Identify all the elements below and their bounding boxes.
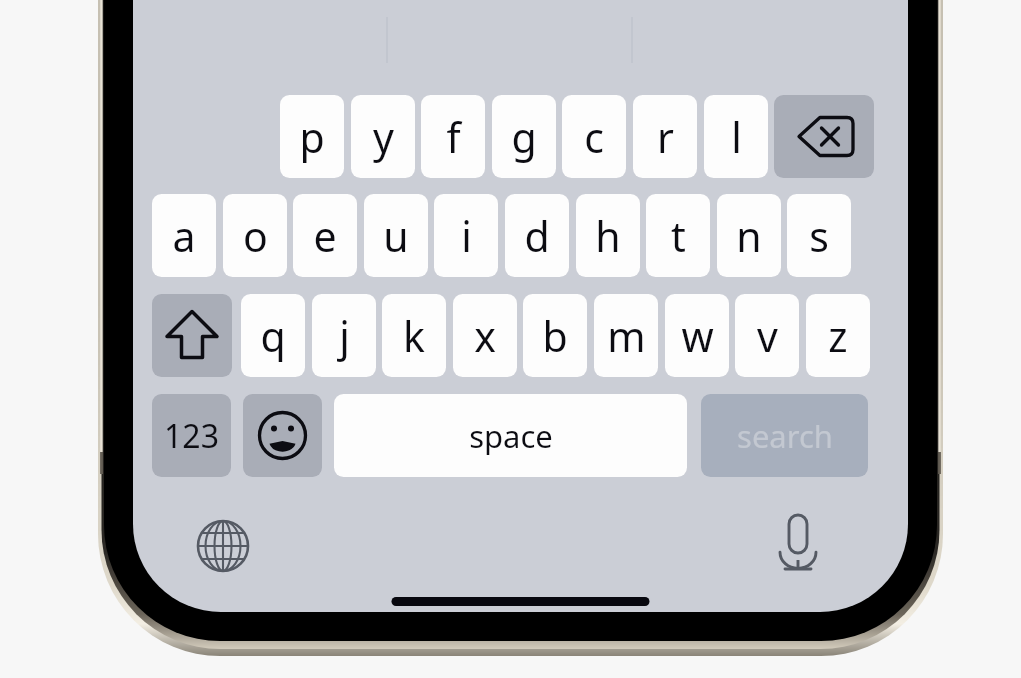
staticText: r bbox=[657, 109, 674, 165]
staticText: x bbox=[474, 308, 496, 364]
staticText: 123 bbox=[164, 414, 219, 458]
staticText: e bbox=[313, 208, 337, 264]
button[interactable]: Emoji bbox=[243, 394, 322, 477]
staticText: k bbox=[403, 308, 425, 364]
button[interactable]: m bbox=[594, 294, 658, 377]
button[interactable]: p bbox=[280, 95, 344, 178]
button[interactable]: y bbox=[351, 95, 415, 178]
button[interactable]: d bbox=[505, 194, 569, 277]
button[interactable]: j bbox=[312, 294, 376, 377]
staticText: d bbox=[524, 208, 550, 264]
button[interactable]: b bbox=[523, 294, 587, 377]
button[interactable]: search bbox=[701, 394, 868, 477]
staticText: search bbox=[737, 415, 833, 457]
staticText: p bbox=[299, 109, 325, 165]
button[interactable]: g bbox=[492, 95, 556, 178]
staticText: v bbox=[757, 308, 778, 364]
staticText: c bbox=[584, 109, 604, 165]
button[interactable]: h bbox=[576, 194, 640, 277]
button[interactable]: c bbox=[562, 95, 626, 178]
button[interactable]: w bbox=[665, 294, 729, 377]
button[interactable]: o bbox=[223, 194, 287, 277]
staticText: b bbox=[542, 308, 568, 364]
button[interactable]: space bbox=[334, 394, 687, 477]
button[interactable]: r bbox=[633, 95, 697, 178]
staticText: g bbox=[511, 109, 537, 165]
staticText: q bbox=[260, 308, 286, 364]
button[interactable]: k bbox=[382, 294, 446, 377]
button[interactable]: n bbox=[717, 194, 781, 277]
button[interactable]: t bbox=[646, 194, 710, 277]
staticText: o bbox=[243, 208, 268, 264]
staticText: n bbox=[736, 208, 762, 264]
button[interactable]: i bbox=[434, 194, 498, 277]
button[interactable]: f bbox=[421, 95, 485, 178]
staticText: y bbox=[373, 109, 394, 165]
staticText: f bbox=[446, 109, 461, 165]
button[interactable]: u bbox=[364, 194, 428, 277]
staticText: m bbox=[607, 308, 646, 364]
staticText: t bbox=[671, 208, 686, 264]
button[interactable]: s bbox=[787, 194, 851, 277]
staticText: z bbox=[828, 308, 848, 364]
button[interactable]: x bbox=[453, 294, 517, 377]
button[interactable]: Backspace bbox=[774, 95, 874, 178]
staticText: i bbox=[461, 208, 472, 264]
button[interactable]: l bbox=[704, 95, 768, 178]
staticText: s bbox=[809, 208, 829, 264]
button[interactable]: z bbox=[806, 294, 870, 377]
staticText: l bbox=[731, 109, 742, 165]
staticText: space bbox=[469, 415, 553, 457]
staticText: a bbox=[172, 208, 196, 264]
button[interactable]: q bbox=[241, 294, 305, 377]
button[interactable]: Shift bbox=[152, 294, 232, 377]
button[interactable]: v bbox=[735, 294, 799, 377]
staticText: j bbox=[339, 308, 350, 364]
staticText: w bbox=[681, 308, 714, 364]
button[interactable]: e bbox=[293, 194, 357, 277]
button[interactable]: 123 bbox=[152, 394, 231, 477]
staticText: h bbox=[595, 208, 621, 264]
button[interactable]: a bbox=[152, 194, 216, 277]
staticText: u bbox=[383, 208, 409, 264]
